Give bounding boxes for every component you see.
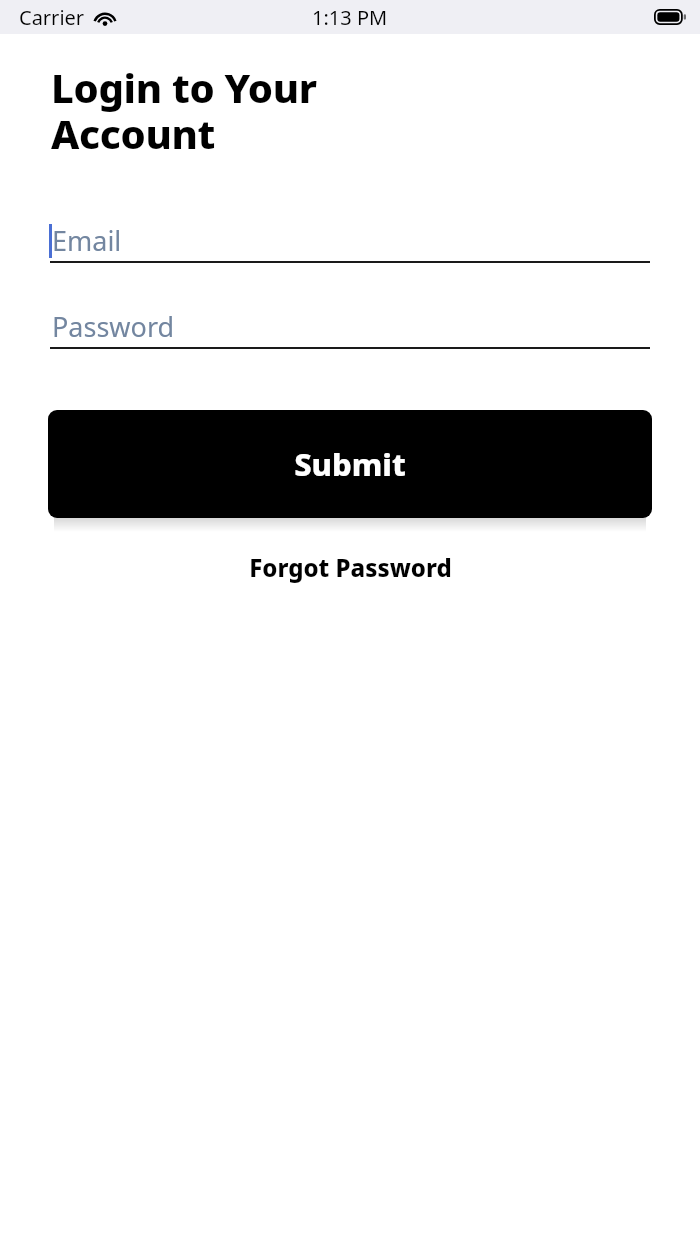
staticText: Password [52, 308, 175, 345]
staticText: Submit [294, 443, 406, 485]
button[interactable]: Password [50, 306, 650, 349]
staticText: Forgot Password [249, 551, 452, 584]
button[interactable]: Submit [48, 410, 652, 518]
button[interactable]: Forgot Password [233, 545, 468, 590]
staticText: Carrier [19, 4, 85, 31]
staticText: Login to Your Account [51, 60, 317, 161]
staticText: Email [52, 222, 122, 259]
button[interactable]: Email [50, 220, 650, 263]
staticText: 1:13 PM [312, 4, 388, 31]
